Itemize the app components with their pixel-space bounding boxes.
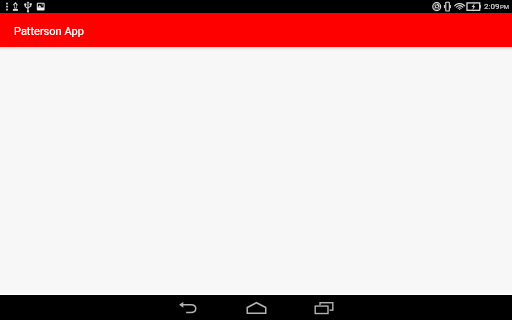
button[interactable]: Patterson App: [0, 13, 512, 47]
button[interactable]: Back: [163, 295, 212, 320]
staticText: PM: [500, 3, 510, 10]
staticText: Patterson App: [14, 25, 84, 38]
button[interactable]: Home: [232, 295, 281, 320]
button[interactable]: Recent apps: [299, 295, 348, 320]
staticText: 2:09: [484, 2, 500, 11]
